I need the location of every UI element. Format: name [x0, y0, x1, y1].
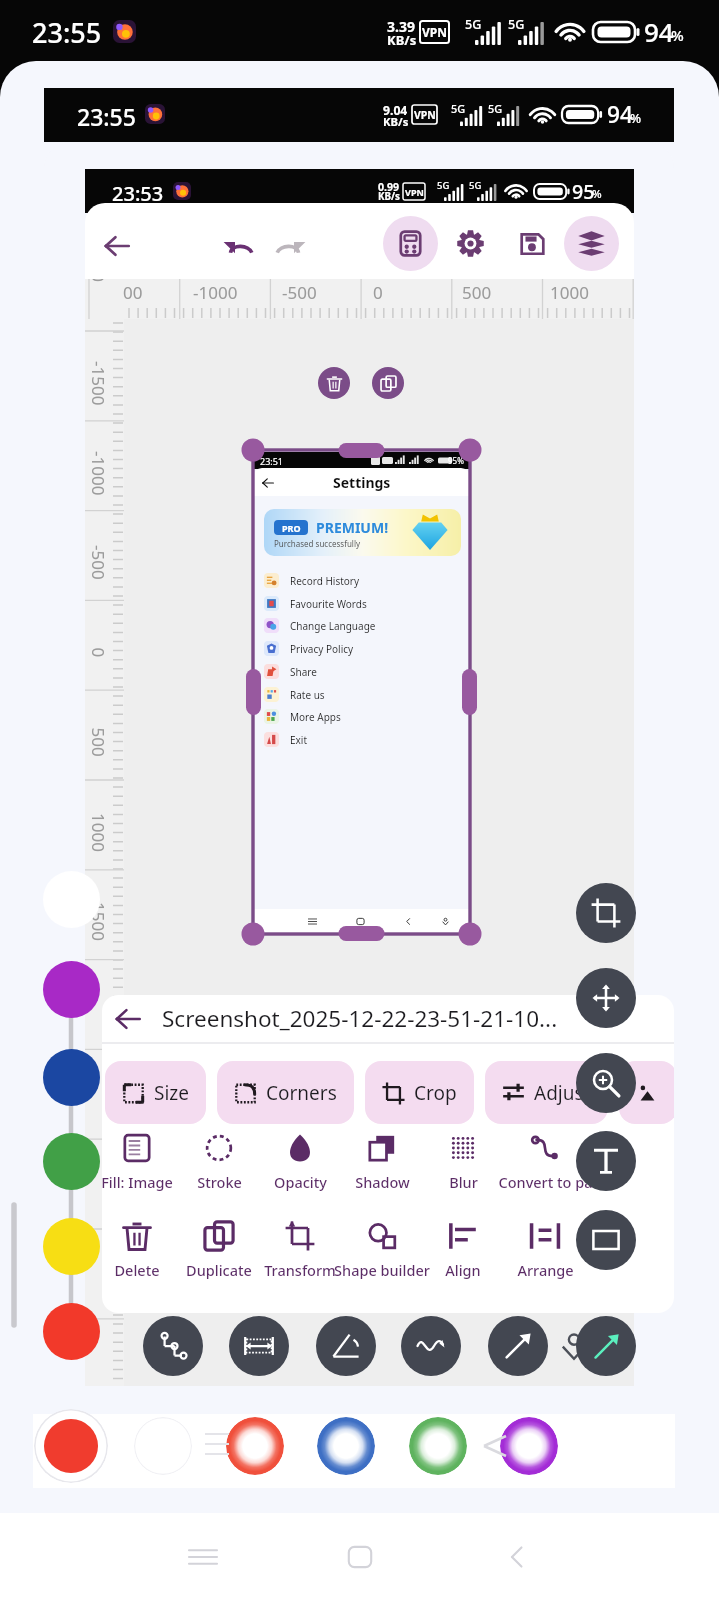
button[interactable]: Back	[438, 1526, 595, 1588]
staticText: Shape builder	[334, 1260, 430, 1280]
button[interactable]: Crop	[365, 1061, 474, 1124]
button[interactable]: Share	[264, 661, 461, 682]
button[interactable]: Back	[106, 997, 150, 1041]
button[interactable]: Corners	[217, 1061, 354, 1124]
button[interactable]: Colour	[43, 871, 100, 928]
button[interactable]: Arrange	[485, 1220, 605, 1292]
button[interactable]: More Apps	[264, 706, 461, 727]
staticText: Transform	[264, 1260, 336, 1280]
button[interactable]: Rate us	[264, 684, 461, 705]
button[interactable]: Path	[143, 1316, 203, 1376]
button[interactable]: Exit	[264, 729, 461, 750]
button[interactable]: Duplicate	[372, 367, 404, 399]
button[interactable]: Nav	[435, 911, 455, 931]
staticText: Crop	[414, 1080, 457, 1106]
button[interactable]: Add shape	[576, 1210, 636, 1270]
staticText: 5G	[465, 16, 482, 33]
staticText: -500	[87, 545, 110, 580]
staticText: Blur	[449, 1172, 478, 1192]
button[interactable]: Delete	[318, 367, 350, 399]
button[interactable]: Record History	[264, 570, 461, 591]
button[interactable]: Stroke	[159, 1132, 279, 1204]
button[interactable]: Colour	[43, 1303, 100, 1360]
button[interactable]: Nav	[398, 911, 418, 931]
button[interactable]: Zoom in	[576, 1053, 636, 1113]
button[interactable]: Add text	[576, 1131, 636, 1191]
staticText: -1000	[87, 451, 110, 496]
button[interactable]: Layers	[564, 216, 619, 271]
button[interactable]: Opacity	[240, 1132, 360, 1204]
button[interactable]: Redo	[269, 224, 313, 268]
staticText: VPN	[414, 108, 436, 122]
button[interactable]: Colour swatch	[500, 1417, 558, 1475]
staticText: 5G	[508, 16, 525, 33]
button[interactable]: Angle	[316, 1316, 376, 1376]
button[interactable]: Change Language	[264, 615, 461, 636]
button[interactable]: Size	[105, 1061, 206, 1124]
button[interactable]: Nav	[350, 911, 370, 931]
button[interactable]: Blur	[403, 1132, 523, 1204]
staticText: Rate us	[290, 688, 325, 702]
button[interactable]: Line	[488, 1316, 548, 1376]
button[interactable]: Back	[95, 224, 139, 268]
button[interactable]: Select	[576, 1316, 636, 1376]
staticText: %	[671, 25, 684, 45]
staticText: -1500	[87, 361, 110, 406]
button[interactable]: Shape builder	[322, 1220, 442, 1292]
button[interactable]: Home	[281, 1526, 438, 1588]
button[interactable]: Fill: Image	[102, 1132, 197, 1204]
button[interactable]: Colour	[43, 1218, 100, 1275]
staticText: Stroke	[197, 1172, 242, 1192]
staticText: 0	[86, 647, 109, 657]
staticText: Exit	[290, 733, 308, 747]
button[interactable]: Duplicate	[159, 1220, 279, 1292]
button[interactable]: Privacy Policy	[264, 638, 461, 659]
button[interactable]: Move	[576, 968, 636, 1028]
button[interactable]: Colour	[43, 961, 100, 1018]
button[interactable]: Settings	[443, 216, 498, 271]
button[interactable]: Colour swatch	[317, 1417, 375, 1475]
button[interactable]: Undo	[216, 224, 260, 268]
button[interactable]: Measure	[229, 1316, 289, 1376]
staticText: Settings	[333, 473, 391, 492]
staticText: 500	[86, 727, 109, 757]
staticText: KB/s	[387, 31, 417, 49]
staticText: 2000	[87, 279, 110, 282]
button[interactable]: Nav	[302, 911, 322, 931]
button[interactable]: Recent apps	[124, 1526, 281, 1588]
button[interactable]: Grid	[383, 216, 438, 271]
button[interactable]: Transform	[240, 1220, 360, 1292]
staticText: Shadow	[355, 1172, 410, 1192]
button[interactable]: Convert to pa	[485, 1132, 605, 1204]
staticText: 95%	[448, 455, 464, 466]
button[interactable]: Colour	[43, 1049, 100, 1106]
staticText: 1500	[87, 902, 110, 941]
staticText: 3.39	[387, 17, 415, 36]
staticText: 1000	[87, 813, 110, 852]
button[interactable]: Align	[403, 1220, 523, 1292]
staticText: Delete	[114, 1260, 160, 1280]
button[interactable]: Crop	[576, 883, 636, 943]
button[interactable]: Colour	[43, 1133, 100, 1190]
button[interactable]: Shadow	[322, 1132, 442, 1204]
button[interactable]: More	[619, 1061, 674, 1124]
button[interactable]: Curve	[401, 1316, 461, 1376]
button[interactable]: Favourite Words	[264, 593, 461, 614]
staticText: 5G	[437, 179, 450, 192]
staticText: 5G	[451, 101, 466, 116]
staticText: Align	[445, 1260, 481, 1280]
staticText: 5G	[469, 179, 482, 192]
button[interactable]: Save	[505, 216, 560, 271]
staticText: VPN	[405, 186, 424, 198]
staticText: PRO	[282, 522, 301, 534]
staticText: -500	[282, 281, 317, 304]
staticText: Corners	[266, 1080, 337, 1106]
button[interactable]: Colour swatch	[34, 1409, 108, 1483]
staticText: 94	[607, 99, 633, 130]
button[interactable]: Adjust	[485, 1061, 608, 1124]
button[interactable]: Colour swatch	[409, 1417, 467, 1475]
button[interactable]: Colour swatch	[226, 1417, 284, 1475]
staticText: 0	[373, 281, 383, 304]
button[interactable]: Delete	[102, 1220, 197, 1292]
